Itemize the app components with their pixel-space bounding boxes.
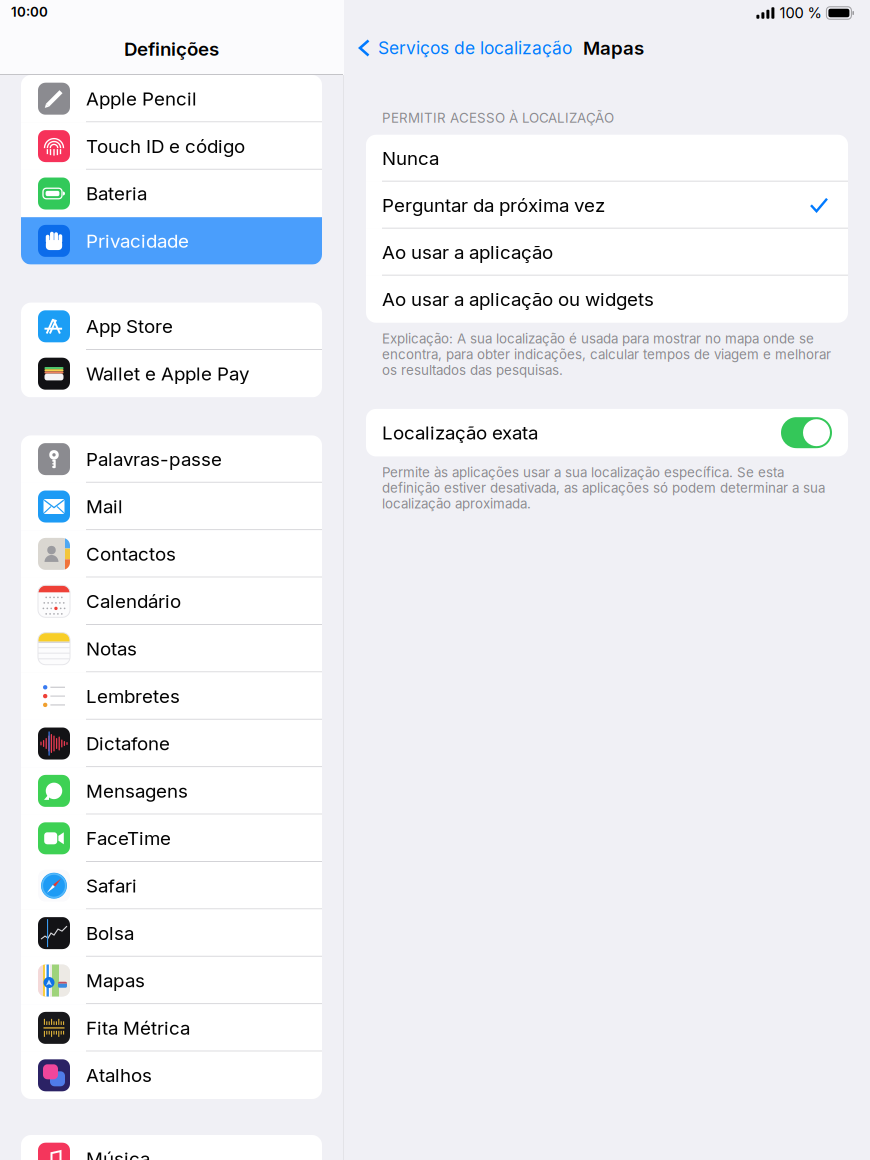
button[interactable]: Notas <box>21 625 322 672</box>
staticText: Dictafone <box>86 732 170 754</box>
staticText: Notas <box>86 638 137 660</box>
staticText: Mapas <box>583 37 644 59</box>
button[interactable]: Ao usar a aplicação <box>366 229 848 276</box>
staticText: FaceTime <box>86 827 171 849</box>
staticText: Ao usar a aplicação ou widgets <box>382 288 654 310</box>
staticText: Wallet e Apple Pay <box>86 363 249 385</box>
staticText: 10:00 <box>11 4 48 20</box>
button[interactable]: Bateria <box>21 170 322 217</box>
staticText: Explicação: A sua localização é usada pa… <box>382 331 831 378</box>
staticText: Perguntar da próxima vez <box>382 194 605 216</box>
staticText: Contactos <box>86 543 176 565</box>
staticText: Privacidade <box>86 230 189 252</box>
staticText: Mensagens <box>86 780 188 802</box>
staticText: Música <box>86 1148 150 1160</box>
button[interactable]: Música <box>21 1135 322 1160</box>
staticText: Bolsa <box>86 922 134 944</box>
staticText: Lembretes <box>86 685 180 707</box>
staticText: Mail <box>86 495 123 517</box>
staticText: PERMITIR ACESSO À LOCALIZAÇÃO <box>382 110 614 126</box>
staticText: Mapas <box>86 969 145 991</box>
staticText: Bateria <box>86 182 147 204</box>
button[interactable]: Privacidade <box>21 217 322 265</box>
button[interactable]: Palavras-passe <box>21 435 322 483</box>
button[interactable]: Wallet e Apple Pay <box>21 350 322 397</box>
button[interactable]: FaceTime <box>21 815 322 862</box>
staticText: Fita Métrica <box>86 1017 190 1039</box>
button[interactable]: Lembretes <box>21 672 322 720</box>
staticText: Apple Pencil <box>86 88 197 110</box>
staticText: Calendário <box>86 590 181 612</box>
button[interactable]: Dictafone <box>21 720 322 767</box>
button[interactable]: Mensagens <box>21 767 322 815</box>
button[interactable]: Nunca <box>366 135 848 182</box>
button[interactable]: Perguntar da próxima vez <box>366 182 848 229</box>
staticText: Definições <box>124 38 219 60</box>
button[interactable]: Ao usar a aplicação ou widgets <box>366 276 848 323</box>
button[interactable]: Apple Pencil <box>21 75 322 122</box>
button[interactable]: Fita Métrica <box>21 1004 322 1052</box>
staticText: 100 % <box>779 4 821 22</box>
staticText: Serviços de localização <box>378 38 572 58</box>
button[interactable]: Calendário <box>21 578 322 625</box>
staticText: Ao usar a aplicação <box>382 241 553 263</box>
staticText: App Store <box>86 315 173 337</box>
staticText: Permite às aplicações usar a sua localiz… <box>382 464 825 512</box>
button[interactable]: Safari <box>21 862 322 909</box>
staticText: Touch ID e código <box>86 135 245 157</box>
staticText: Palavras-passe <box>86 448 222 470</box>
button[interactable]: Mail <box>21 483 322 530</box>
button[interactable]: Atalhos <box>21 1052 322 1099</box>
button[interactable]: Touch ID e código <box>21 122 322 170</box>
button[interactable]: Bolsa <box>21 909 322 957</box>
button[interactable]: Localização exata <box>366 409 848 456</box>
button[interactable]: Serviços de localização <box>357 37 576 58</box>
staticText: Localização exata <box>382 422 538 444</box>
button[interactable]: Mapas <box>21 957 322 1004</box>
staticText: Nunca <box>382 147 439 169</box>
staticText: Safari <box>86 875 137 897</box>
staticText: Atalhos <box>86 1064 152 1086</box>
button[interactable]: Contactos <box>21 530 322 578</box>
button[interactable]: App Store <box>21 303 322 350</box>
